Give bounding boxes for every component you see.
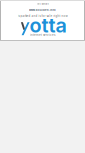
button[interactable]: www.boulden.info — [0, 8, 85, 12]
staticText: this domain — [36, 3, 48, 5]
staticText: www.boulden.info — [29, 8, 56, 11]
staticText: internet services — [30, 33, 55, 37]
staticText: is parked and is for sale right now — [17, 14, 67, 18]
staticText: otta — [29, 13, 66, 37]
